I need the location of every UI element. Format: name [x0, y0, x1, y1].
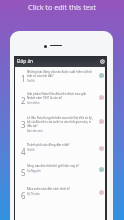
staticText: Lê Văn Hưu là người biên soạn bộ Đại Việ… — [27, 116, 94, 128]
button[interactable]: 3 — [15, 113, 105, 140]
staticText: Bạn cần xem — [27, 129, 43, 133]
button[interactable]: 6 — [15, 184, 105, 206]
button[interactable]: 2 — [15, 89, 105, 113]
button[interactable]: 5 — [15, 161, 105, 184]
staticText: Kỷ Thị nào — [27, 192, 40, 196]
button[interactable]: Đáp án — [15, 56, 105, 67]
staticText: Click to edit this text — [0, 2, 124, 12]
staticText: Sông nào dài nhất thế giới hiện nay ở? — [27, 164, 79, 168]
staticText: Mùa xuân nào đến sớm nhất ở? — [27, 187, 70, 191]
button[interactable]: Settings — [99, 58, 106, 65]
button[interactable]: Status — [99, 167, 104, 172]
button[interactable]: 4 — [15, 140, 105, 161]
staticText: Tại Nguyên — [27, 169, 41, 173]
staticText: Đáp án — [17, 58, 34, 65]
staticText: Thành phố nào đông dân nhất? — [27, 143, 70, 147]
button[interactable]: Status — [99, 119, 104, 124]
staticText: Trả lời — [27, 79, 35, 83]
button[interactable]: Status — [99, 73, 104, 78]
button[interactable]: Status — [99, 190, 104, 195]
button[interactable]: Status — [99, 95, 104, 100]
button[interactable]: 1 — [15, 67, 105, 89]
staticText: 1 — [21, 73, 26, 84]
staticText: 3 — [21, 119, 26, 130]
staticText: Trả lời — [27, 148, 35, 152]
staticText: 2 — [21, 95, 26, 106]
staticText: 5 — [21, 167, 26, 178]
staticText: Xem thêm — [27, 101, 40, 105]
button[interactable]: Status — [99, 146, 104, 151]
staticText: Những loài động vật nào được xuất hiện t… — [27, 70, 94, 78]
staticText: Giải phẩm Nobel lần đầu tiên được trao g… — [27, 92, 94, 100]
staticText: 4 — [21, 146, 26, 157]
staticText: 6 — [21, 190, 26, 201]
